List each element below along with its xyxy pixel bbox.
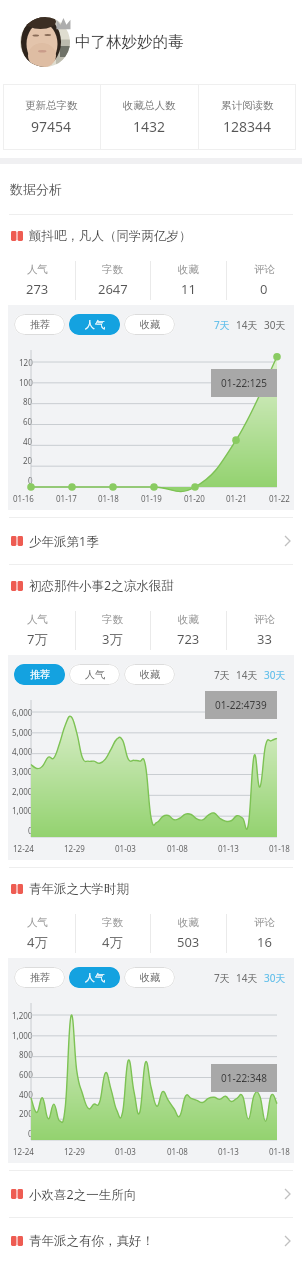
staticText: 01-22:348 xyxy=(221,1071,267,1085)
staticText: 小欢喜2之一生所向 xyxy=(29,1186,137,1203)
staticText: 60 xyxy=(23,416,33,427)
staticText: 01-22:125 xyxy=(221,376,267,390)
staticText: 人气 xyxy=(85,668,105,681)
button[interactable]: 青年派之有你，真好！ xyxy=(0,1218,302,1264)
button[interactable]: 收藏 xyxy=(124,314,175,335)
button[interactable]: 30天 xyxy=(261,971,289,985)
staticText: 收藏 xyxy=(140,318,160,331)
button[interactable]: 14天 xyxy=(233,318,261,332)
staticText: 颤抖吧，凡人（同学两亿岁） xyxy=(29,228,192,244)
staticText: 7天 xyxy=(214,971,230,985)
staticText: 14天 xyxy=(236,971,258,985)
button[interactable]: 人气 xyxy=(69,967,120,988)
button[interactable]: 7天 xyxy=(211,318,233,332)
staticText: 120 xyxy=(19,357,33,368)
staticText: 16 xyxy=(257,933,272,951)
button[interactable]: 收藏总人数 xyxy=(101,84,198,150)
staticText: 3,000 xyxy=(12,766,33,777)
staticText: 数据分析 xyxy=(10,181,62,197)
staticText: 7天 xyxy=(214,318,230,332)
button[interactable]: 14天 xyxy=(233,971,261,985)
staticText: 400 xyxy=(19,1089,33,1100)
staticText: 人气 xyxy=(85,971,105,984)
button[interactable]: 7天 xyxy=(211,668,233,682)
staticText: 01-20 xyxy=(184,493,205,504)
staticText: 01-19 xyxy=(141,493,162,504)
staticText: 4,000 xyxy=(12,746,33,757)
staticText: 128344 xyxy=(223,117,272,136)
staticText: 7万 xyxy=(27,630,48,648)
staticText: 01-08 xyxy=(167,1146,188,1157)
staticText: 80 xyxy=(23,396,33,407)
staticText: 12-24 xyxy=(13,843,34,854)
button[interactable]: 14天 xyxy=(233,668,261,682)
staticText: 01-13 xyxy=(218,843,239,854)
staticText: 600 xyxy=(19,1069,33,1080)
button[interactable]: 小欢喜2之一生所向 xyxy=(0,1171,302,1217)
staticText: 20 xyxy=(23,455,33,466)
button[interactable]: 人气 xyxy=(69,314,120,335)
staticText: 人气 xyxy=(85,318,105,331)
staticText: 推荐 xyxy=(30,318,50,331)
staticText: 12-29 xyxy=(64,843,85,854)
button[interactable]: 收藏 xyxy=(124,967,175,988)
staticText: 97454 xyxy=(31,117,72,136)
staticText: 01-17 xyxy=(56,493,77,504)
staticText: 0 xyxy=(28,825,33,836)
staticText: 30天 xyxy=(264,668,286,682)
button[interactable]: 推荐 xyxy=(14,664,65,685)
staticText: 2,000 xyxy=(12,786,33,797)
button[interactable]: 7天 xyxy=(211,971,233,985)
button[interactable]: 推荐 xyxy=(14,967,65,988)
staticText: 01-18 xyxy=(269,1146,290,1157)
staticText: 收藏 xyxy=(140,668,160,681)
staticText: 01-18 xyxy=(269,843,290,854)
staticText: 200 xyxy=(19,1108,33,1119)
staticText: 字数 xyxy=(102,916,123,929)
staticText: 2647 xyxy=(98,280,128,298)
button[interactable]: 收藏 xyxy=(124,664,175,685)
staticText: 273 xyxy=(26,280,49,298)
staticText: 1,000 xyxy=(12,1030,33,1041)
staticText: 收藏总人数 xyxy=(123,99,176,112)
staticText: 12-29 xyxy=(64,1146,85,1157)
staticText: 1,200 xyxy=(12,1010,33,1021)
button[interactable]: 青年派之大学时期 xyxy=(0,868,302,909)
staticText: 723 xyxy=(177,630,200,648)
staticText: 人气 xyxy=(27,613,48,626)
staticText: 100 xyxy=(19,377,33,388)
staticText: 字数 xyxy=(102,263,123,276)
staticText: 推荐 xyxy=(30,668,50,681)
button[interactable]: 30天 xyxy=(261,318,289,332)
staticText: 01-22:4739 xyxy=(215,698,267,712)
button[interactable]: 30天 xyxy=(261,668,289,682)
staticText: 01-03 xyxy=(115,1146,136,1157)
staticText: 青年派之大学时期 xyxy=(29,881,129,897)
staticText: 少年派第1季 xyxy=(29,533,99,550)
staticText: 1432 xyxy=(133,117,166,136)
staticText: 30天 xyxy=(264,318,286,332)
staticText: 青年派之有你，真好！ xyxy=(29,1233,154,1249)
staticText: 0 xyxy=(28,475,33,486)
staticText: 14天 xyxy=(236,668,258,682)
button[interactable]: 人气 xyxy=(69,664,120,685)
staticText: 01-21 xyxy=(226,493,247,504)
button[interactable]: 累计阅读数 xyxy=(199,84,296,150)
button[interactable]: 初恋那件小事2之凉水很甜 xyxy=(0,565,302,606)
button[interactable]: 更新总字数 xyxy=(3,84,100,150)
button[interactable]: 颤抖吧，凡人（同学两亿岁） xyxy=(0,215,302,256)
staticText: 30天 xyxy=(264,971,286,985)
staticText: 1,000 xyxy=(12,805,33,816)
staticText: 12-24 xyxy=(13,1146,34,1157)
staticText: 11 xyxy=(181,280,196,298)
button[interactable]: 推荐 xyxy=(14,314,65,335)
staticText: 01-16 xyxy=(13,493,34,504)
staticText: 更新总字数 xyxy=(25,99,78,112)
staticText: 6,000 xyxy=(12,707,33,718)
staticText: 800 xyxy=(19,1049,33,1060)
staticText: 收藏 xyxy=(140,971,160,984)
staticText: 4万 xyxy=(27,933,48,951)
staticText: 503 xyxy=(177,933,200,951)
staticText: 7天 xyxy=(214,668,230,682)
button[interactable]: 少年派第1季 xyxy=(0,518,302,564)
